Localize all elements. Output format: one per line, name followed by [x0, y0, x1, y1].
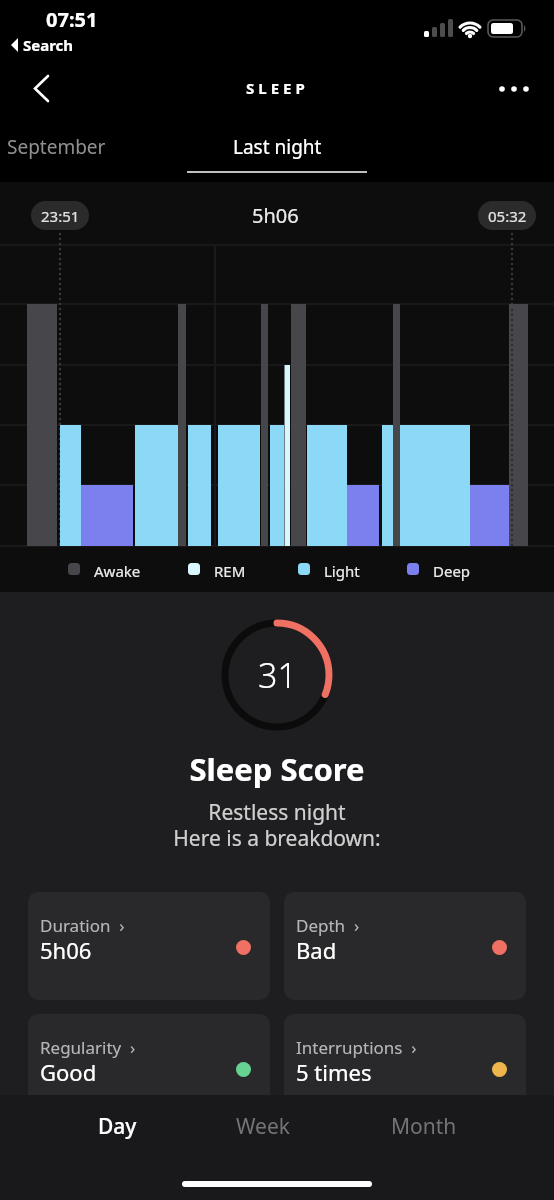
staticText: Interruptions ›: [296, 1036, 417, 1059]
staticText: Good: [40, 1057, 97, 1087]
staticText: Search: [23, 35, 74, 55]
staticText: Last night: [233, 134, 322, 160]
button[interactable]: Day: [70, 1104, 164, 1148]
staticText: Duration ›: [40, 914, 125, 937]
staticText: 05:32: [488, 206, 527, 226]
staticText: Week: [236, 1112, 291, 1141]
button[interactable]: Search: [8, 34, 88, 56]
staticText: 5 times: [296, 1057, 372, 1087]
staticText: 31: [258, 652, 297, 698]
staticText: REM: [214, 561, 246, 581]
staticText: Sleep Score: [189, 748, 365, 790]
staticText: Here is a breakdown:: [173, 824, 381, 853]
button[interactable]: SLEEP: [200, 74, 354, 102]
staticText: Restless night: [208, 798, 346, 827]
staticText: Depth ›: [296, 914, 360, 937]
staticText: Regularity ›: [40, 1036, 136, 1059]
staticText: 5h06: [252, 202, 299, 229]
staticText: Deep: [433, 561, 471, 581]
button[interactable]: Regularity ›: [28, 1014, 270, 1122]
staticText: Bad: [296, 935, 337, 965]
staticText: Light: [324, 561, 360, 581]
staticText: 5h06: [40, 935, 92, 965]
button[interactable]: Duration ›: [28, 892, 270, 1000]
button[interactable]: [22, 68, 66, 108]
button[interactable]: Depth ›: [284, 892, 526, 1000]
button[interactable]: Interruptions ›: [284, 1014, 526, 1122]
button[interactable]: Week: [210, 1104, 316, 1148]
button[interactable]: Month: [370, 1104, 478, 1148]
staticText: 07:51: [46, 6, 98, 33]
button[interactable]: 31: [219, 617, 335, 733]
staticText: Awake: [94, 561, 141, 581]
button[interactable]: [488, 72, 540, 104]
staticText: 23:51: [41, 206, 80, 226]
staticText: SLEEP: [246, 78, 309, 98]
staticText: September: [7, 134, 106, 160]
staticText: Day: [98, 1112, 137, 1141]
button[interactable]: September: [0, 130, 106, 164]
staticText: Month: [391, 1112, 457, 1141]
button[interactable]: Last night: [187, 130, 367, 164]
